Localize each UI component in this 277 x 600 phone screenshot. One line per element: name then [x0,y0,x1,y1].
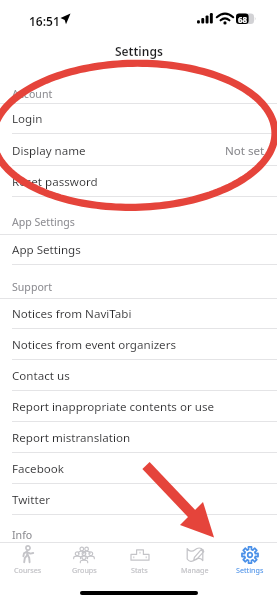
button[interactable]: Report inappropriate contents or use [0,391,277,422]
button[interactable]: Report mistranslation [0,422,277,453]
button[interactable]: Courses [0,542,56,576]
button[interactable]: Notices from event organizers [0,329,277,360]
staticText: Notices from NaviTabi [12,306,132,322]
button[interactable]: Login [0,103,277,134]
staticText: Account [12,87,53,101]
button[interactable]: Manage [167,542,222,576]
staticText: Reset password [12,174,98,190]
staticText: Groups [72,565,97,575]
button[interactable]: App Settings [0,234,277,265]
staticText: App Settings [12,242,81,258]
button[interactable]: Notices from NaviTabi [0,298,277,329]
staticText: Manage [181,565,209,575]
button[interactable]: Settings [222,542,277,576]
staticText: Report mistranslation [12,430,131,446]
staticText: 68 [238,14,248,25]
staticText: Login [12,111,43,127]
staticText: Settings [236,565,264,575]
staticText: Not set [225,143,265,159]
staticText: Notices from event organizers [12,337,176,353]
button[interactable]: Display name [0,135,277,166]
staticText: 16:51 [29,13,60,29]
staticText: Report inappropriate contents or use [12,399,214,415]
button[interactable]: Reset password [0,166,277,197]
button[interactable]: Facebook [0,453,277,484]
staticText: App Settings [12,215,75,229]
staticText: Display name [12,143,86,159]
button[interactable]: Contact us [0,360,277,391]
staticText: Support [12,280,53,294]
staticText: Contact us [12,368,70,384]
staticText: Info [12,528,33,542]
staticText: Facebook [12,461,64,477]
button[interactable]: Groups [56,542,112,576]
staticText: Courses [14,565,42,575]
staticText: Settings [115,43,163,59]
staticText: Twitter [12,492,51,508]
staticText: Stats [131,565,148,575]
button[interactable]: Twitter [0,484,277,515]
button[interactable]: Stats [112,542,167,576]
